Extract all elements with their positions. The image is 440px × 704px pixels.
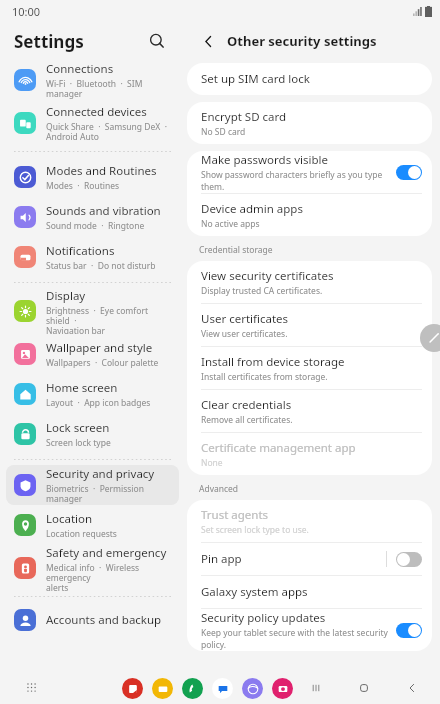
staticText: Safety and emergency: [46, 545, 167, 561]
staticText: No SD card: [201, 126, 246, 138]
button[interactable]: Edit: [420, 324, 440, 352]
staticText: Wallpaper and style: [46, 340, 153, 356]
button[interactable]: phone: [182, 678, 203, 699]
staticText: Notifications: [46, 243, 115, 259]
staticText: Install certificates from storage.: [201, 371, 328, 383]
button[interactable]: On: [396, 623, 422, 638]
button[interactable]: files: [152, 678, 173, 699]
staticText: Location requests: [46, 528, 117, 540]
button[interactable]: User certificates: [187, 304, 432, 346]
staticText: Advanced: [199, 483, 239, 495]
button[interactable]: Back: [402, 678, 422, 698]
staticText: Clear credentials: [201, 397, 292, 413]
staticText: User certificates: [201, 311, 289, 327]
staticText: Modes and Routines: [46, 163, 157, 179]
staticText: Layout · App icon badges: [46, 397, 151, 409]
staticText: Wi-Fi · Bluetooth · SIM manager: [46, 78, 173, 99]
button[interactable]: Clear credentials: [187, 390, 432, 432]
button[interactable]: Safety and emergency: [6, 545, 179, 591]
staticText: Galaxy system apps: [201, 584, 308, 600]
staticText: Show password characters briefly as you …: [201, 169, 390, 193]
button[interactable]: Make passwords visible: [187, 151, 432, 193]
button[interactable]: Security and privacy: [6, 465, 179, 505]
staticText: Biometrics · Permission manager: [46, 483, 173, 504]
staticText: Security policy updates: [201, 610, 326, 626]
staticText: Make passwords visible: [201, 152, 328, 168]
button[interactable]: note: [122, 678, 143, 699]
button[interactable]: Lock screen: [6, 414, 179, 454]
staticText: Install from device storage: [201, 354, 345, 370]
button[interactable]: Sounds and vibration: [6, 197, 179, 237]
staticText: Set screen lock type to use.: [201, 524, 309, 536]
staticText: None: [201, 457, 223, 469]
staticText: Brightness · Eye comfort shield · Naviga…: [46, 305, 173, 334]
staticText: No active apps: [201, 218, 260, 230]
button[interactable]: Connected devices: [6, 100, 179, 146]
button[interactable]: On: [396, 165, 422, 180]
staticText: Remove all certificates.: [201, 414, 293, 426]
button[interactable]: Recents: [306, 678, 326, 698]
button[interactable]: Certificate management app: [187, 433, 432, 475]
staticText: Connected devices: [46, 104, 147, 120]
button[interactable]: Location: [6, 505, 179, 545]
staticText: Home screen: [46, 380, 118, 396]
staticText: Location: [46, 511, 93, 527]
staticText: Keep your tablet secure with the latest …: [201, 627, 390, 651]
staticText: Sounds and vibration: [46, 203, 161, 219]
button[interactable]: Set up SIM card lock: [187, 63, 432, 95]
staticText: View user certificates.: [201, 328, 288, 340]
staticText: Modes · Routines: [46, 180, 120, 192]
staticText: Trust agents: [201, 507, 269, 523]
staticText: Pin app: [201, 551, 242, 567]
staticText: Accounts and backup: [46, 612, 162, 628]
button[interactable]: Install from device storage: [187, 347, 432, 389]
staticText: Encrypt SD card: [201, 109, 287, 125]
button[interactable]: camera: [272, 678, 293, 699]
staticText: Device admin apps: [201, 201, 303, 217]
button[interactable]: Notifications: [6, 237, 179, 277]
button[interactable]: Wallpaper and style: [6, 334, 179, 374]
staticText: Wallpapers · Colour palette: [46, 357, 159, 369]
button[interactable]: All apps: [22, 678, 42, 698]
button[interactable]: Security policy updates: [187, 609, 432, 651]
staticText: Quick Share · Samsung DeX · Android Auto: [46, 121, 167, 142]
button[interactable]: msg: [212, 678, 233, 699]
staticText: 10:00: [12, 4, 41, 19]
staticText: Status bar · Do not disturb: [46, 260, 156, 272]
button[interactable]: Search: [143, 27, 171, 55]
staticText: Credential storage: [199, 244, 273, 256]
button[interactable]: Accounts and backup: [6, 602, 179, 638]
button[interactable]: Galaxy system apps: [187, 576, 432, 608]
staticText: Security and privacy: [46, 466, 155, 482]
staticText: Display trusted CA certificates.: [201, 285, 323, 297]
button[interactable]: Modes and Routines: [6, 157, 179, 197]
button[interactable]: Home screen: [6, 374, 179, 414]
staticText: Other security settings: [227, 32, 377, 50]
staticText: Medical info · Wireless emergency alerts: [46, 562, 173, 591]
button[interactable]: Home: [354, 678, 374, 698]
button[interactable]: Trust agents: [187, 500, 432, 542]
button[interactable]: Display: [6, 288, 179, 334]
staticText: View security certificates: [201, 268, 334, 284]
staticText: Sound mode · Ringtone: [46, 220, 145, 232]
button[interactable]: Device admin apps: [187, 194, 432, 236]
staticText: Display: [46, 288, 86, 304]
staticText: Settings: [14, 30, 84, 53]
button[interactable]: browser: [242, 678, 263, 699]
staticText: Certificate management app: [201, 440, 356, 456]
button[interactable]: View security certificates: [187, 261, 432, 303]
staticText: Connections: [46, 61, 114, 77]
button[interactable]: Off: [396, 552, 422, 567]
button[interactable]: Connections: [6, 60, 179, 100]
button[interactable]: Back: [195, 28, 221, 54]
staticText: Lock screen: [46, 420, 110, 436]
button[interactable]: Encrypt SD card: [187, 102, 432, 144]
staticText: Set up SIM card lock: [201, 71, 310, 87]
staticText: Screen lock type: [46, 437, 111, 449]
button[interactable]: Pin app: [187, 543, 432, 575]
